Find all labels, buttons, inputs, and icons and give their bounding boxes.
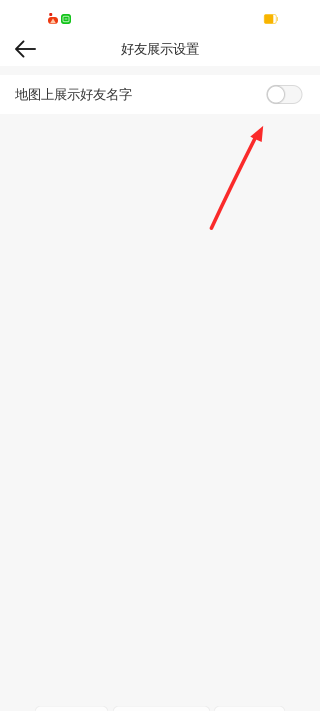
staticText: 地图上展示好友名字 xyxy=(15,86,132,103)
button[interactable]: Back xyxy=(0,32,56,66)
button[interactable]: 在地图上展示好友名字 xyxy=(267,85,302,103)
button[interactable]: 地图上展示好友名字 xyxy=(0,75,320,114)
staticText: 好友展示设置 xyxy=(121,41,199,57)
